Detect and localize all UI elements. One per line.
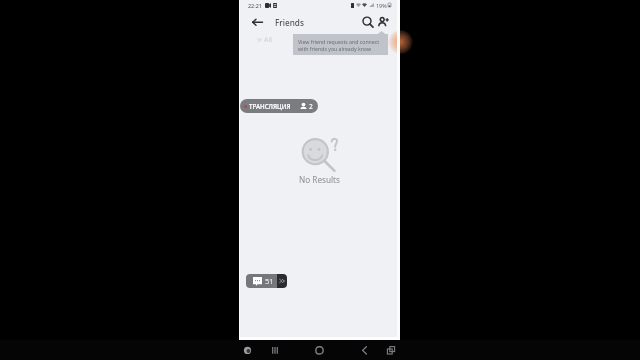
button[interactable]: View friend requests and connect with fr…	[293, 34, 388, 55]
staticText: 51	[265, 276, 274, 286]
button[interactable]: Chat 51 messages	[246, 274, 287, 288]
button[interactable]: Search	[360, 15, 374, 29]
staticText: No Results	[299, 174, 340, 185]
button[interactable]: ТРАНСЛЯЦИЯ	[240, 99, 318, 113]
button[interactable]: All	[255, 34, 275, 46]
staticText: View friend requests and connect with fr…	[298, 38, 380, 52]
button[interactable]: Add friend	[376, 15, 390, 29]
staticText: 22:21	[248, 2, 262, 9]
staticText: All	[264, 35, 273, 45]
staticText: ТРАНСЛЯЦИЯ	[249, 102, 291, 110]
staticText: Friends	[275, 17, 304, 28]
staticText: 19%	[376, 2, 387, 9]
staticText: 2	[309, 102, 313, 111]
button[interactable]: Back	[250, 15, 265, 30]
